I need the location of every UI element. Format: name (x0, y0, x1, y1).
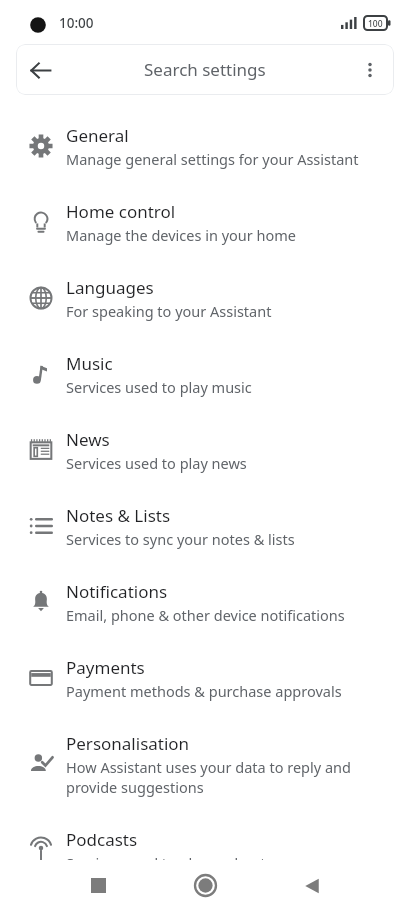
button[interactable]: General (0, 108, 410, 184)
staticText: Personalisation (66, 732, 190, 755)
staticText: News (66, 428, 110, 451)
button[interactable]: More options (346, 46, 394, 94)
staticText: Podcasts (66, 828, 138, 851)
staticText: Search settings (144, 58, 266, 81)
button[interactable]: Music (0, 336, 410, 412)
staticText: For speaking to your Assistant (66, 301, 272, 321)
staticText: Manage general settings for your Assista… (66, 149, 359, 169)
button[interactable]: Back (285, 860, 339, 911)
staticText: 10:00 (59, 14, 94, 32)
staticText: How Assistant uses your data to reply an… (66, 757, 392, 797)
staticText: Services to sync your notes & lists (66, 529, 295, 549)
button[interactable]: Payments (0, 640, 410, 716)
staticText: 100 (368, 18, 383, 30)
button[interactable]: Notifications (0, 564, 410, 640)
staticText: Notes & Lists (66, 504, 171, 527)
staticText: Services used to play podcasts (66, 853, 273, 873)
button[interactable]: Home control (0, 184, 410, 260)
staticText: General (66, 124, 129, 147)
button[interactable]: Back (16, 46, 64, 94)
staticText: Email, phone & other device notification… (66, 605, 345, 625)
staticText: Home control (66, 200, 176, 223)
button[interactable]: Home (178, 860, 232, 911)
button[interactable]: News (0, 412, 410, 488)
button[interactable]: Languages (0, 260, 410, 336)
button[interactable]: Notes & Lists (0, 488, 410, 564)
button[interactable]: Podcasts (0, 812, 410, 888)
staticText: Payments (66, 656, 145, 679)
staticText: Notifications (66, 580, 168, 603)
staticText: Payment methods & purchase approvals (66, 681, 342, 701)
staticText: Music (66, 352, 113, 375)
staticText: Services used to play music (66, 377, 252, 397)
staticText: Services used to play news (66, 453, 247, 473)
staticText: Manage the devices in your home (66, 225, 296, 245)
button[interactable]: Recent apps (71, 860, 125, 911)
button[interactable]: Personalisation (0, 716, 410, 812)
staticText: Languages (66, 276, 154, 299)
